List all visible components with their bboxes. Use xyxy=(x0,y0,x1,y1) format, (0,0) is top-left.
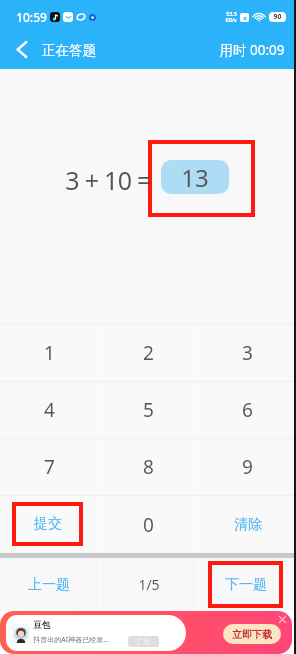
button[interactable]: 上一题 xyxy=(0,558,98,611)
button[interactable]: 6 xyxy=(199,382,296,438)
staticText: KB/s xyxy=(225,17,237,24)
staticText: 3 + 10 = xyxy=(65,163,151,197)
staticText: 0 xyxy=(143,512,154,538)
button[interactable]: 豆包 xyxy=(0,611,292,654)
button[interactable]: 立即下载 xyxy=(223,624,281,644)
button[interactable]: Close ad xyxy=(278,615,287,624)
staticText: x xyxy=(243,14,247,22)
button[interactable]: 0 xyxy=(100,496,197,553)
staticText: 8 xyxy=(143,454,154,480)
button[interactable]: 清除 xyxy=(199,496,296,553)
staticText: 清除 xyxy=(234,516,262,534)
staticText: 立即下载 xyxy=(232,628,272,641)
staticText: 1/5 xyxy=(138,575,160,594)
staticText: 3 xyxy=(242,340,253,366)
staticText: 1 xyxy=(44,340,55,366)
staticText: 13 xyxy=(181,161,209,194)
button[interactable]: 提交 xyxy=(0,496,98,553)
staticText: 下一题 xyxy=(225,576,267,594)
staticText: 提交 xyxy=(34,515,62,533)
staticText: 抖音出的AI神器已经发… xyxy=(33,635,109,645)
staticText: 用时 00:09 xyxy=(219,41,285,59)
staticText: 10:59 xyxy=(16,9,47,25)
staticText: 7 xyxy=(44,454,55,480)
button[interactable]: 4 xyxy=(0,382,98,438)
staticText: 正在答题 xyxy=(42,42,96,59)
button[interactable]: 1 xyxy=(0,325,98,381)
staticText: 5 xyxy=(143,397,154,423)
button[interactable]: 3 xyxy=(199,325,296,381)
button[interactable]: 13 xyxy=(161,160,229,194)
button[interactable]: 5 xyxy=(100,382,197,438)
button[interactable]: Back xyxy=(0,33,42,69)
staticText: 90 xyxy=(273,12,282,22)
button[interactable]: 9 xyxy=(199,439,296,495)
staticText: 广告 xyxy=(137,638,150,646)
staticText: 9 xyxy=(242,454,253,480)
staticText: 2 xyxy=(143,340,154,366)
staticText: 上一题 xyxy=(28,576,70,594)
staticText: 豆包 xyxy=(33,620,50,631)
button[interactable]: 2 xyxy=(100,325,197,381)
button[interactable]: 下一题 xyxy=(199,558,296,611)
staticText: 6 xyxy=(242,397,253,423)
staticText: 53.5 xyxy=(226,10,237,17)
button[interactable]: 8 xyxy=(100,439,197,495)
staticText: 4 xyxy=(44,397,55,423)
button[interactable]: 7 xyxy=(0,439,98,495)
